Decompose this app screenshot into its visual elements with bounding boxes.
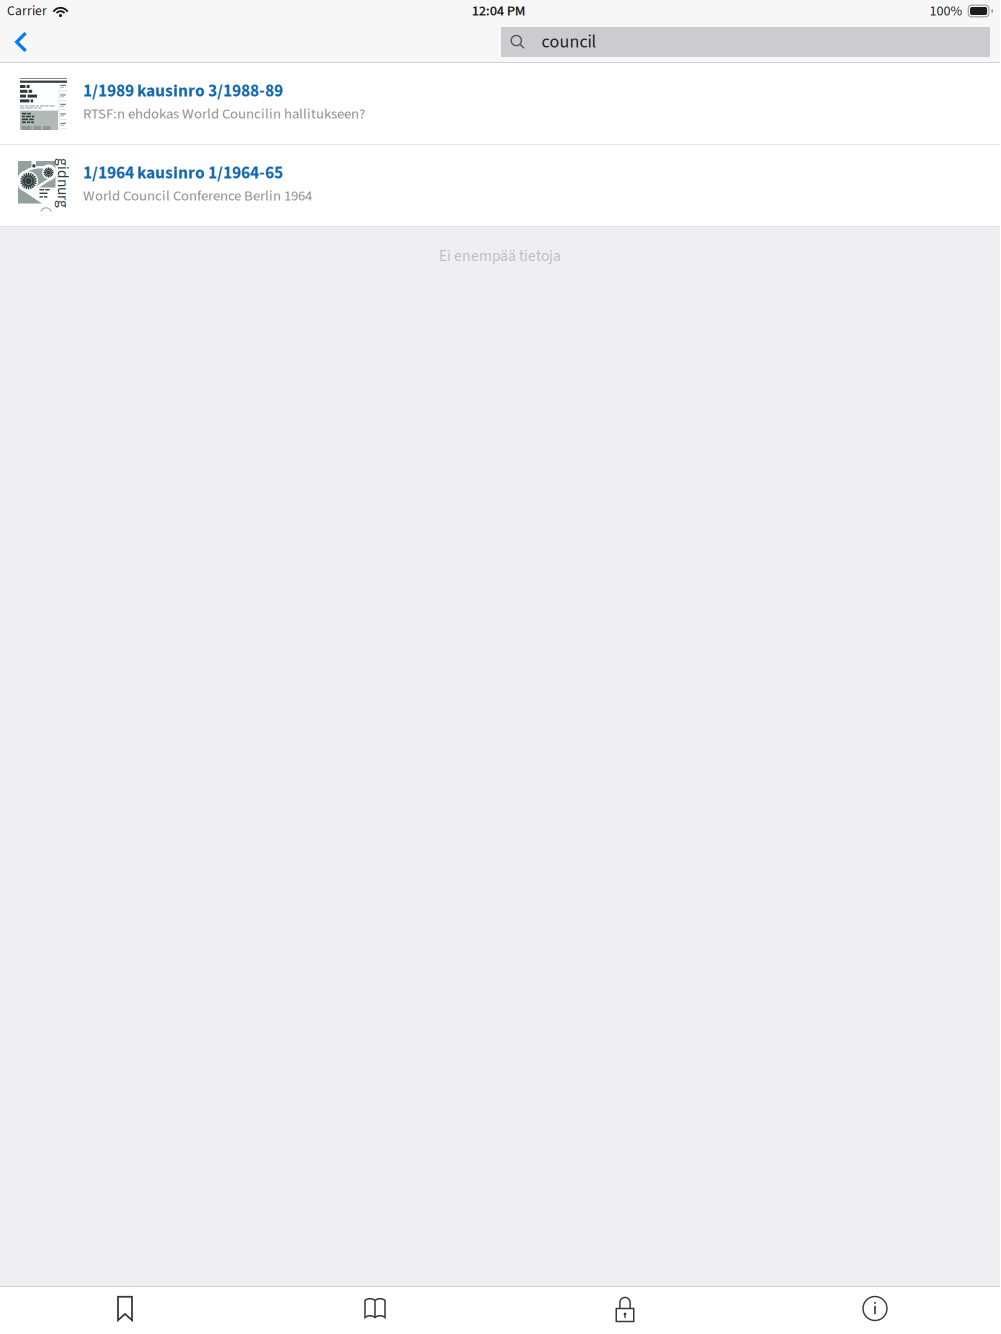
button[interactable]: Back: [0, 22, 37, 62]
staticText: Carrier: [7, 1, 47, 21]
staticText: RTSF:n ehdokas World Councilin hallituks…: [83, 103, 365, 124]
staticText: 1/1989 kausinro 3/1988-89: [83, 79, 283, 103]
staticText: 12:04 PM: [472, 1, 526, 21]
staticText: council: [541, 29, 596, 55]
staticText: gidnurg: [37, 172, 87, 194]
staticText: Ei enempää tietoja: [439, 245, 561, 267]
button[interactable]: gidnurg: [0, 145, 1000, 226]
button[interactable]: 1/1989 kausinro 3/1988-89: [0, 63, 1000, 144]
button[interactable]: Info: [750, 1287, 1000, 1334]
staticText: 1/1964 kausinro 1/1964-65: [83, 161, 283, 185]
button[interactable]: Read: [250, 1287, 500, 1334]
staticText: World Council Conference Berlin 1964: [83, 185, 312, 206]
button[interactable]: Bookmarks: [0, 1287, 250, 1334]
button[interactable]: Account: [500, 1287, 750, 1334]
button[interactable]: council: [501, 27, 990, 57]
staticText: 100%: [929, 1, 962, 21]
